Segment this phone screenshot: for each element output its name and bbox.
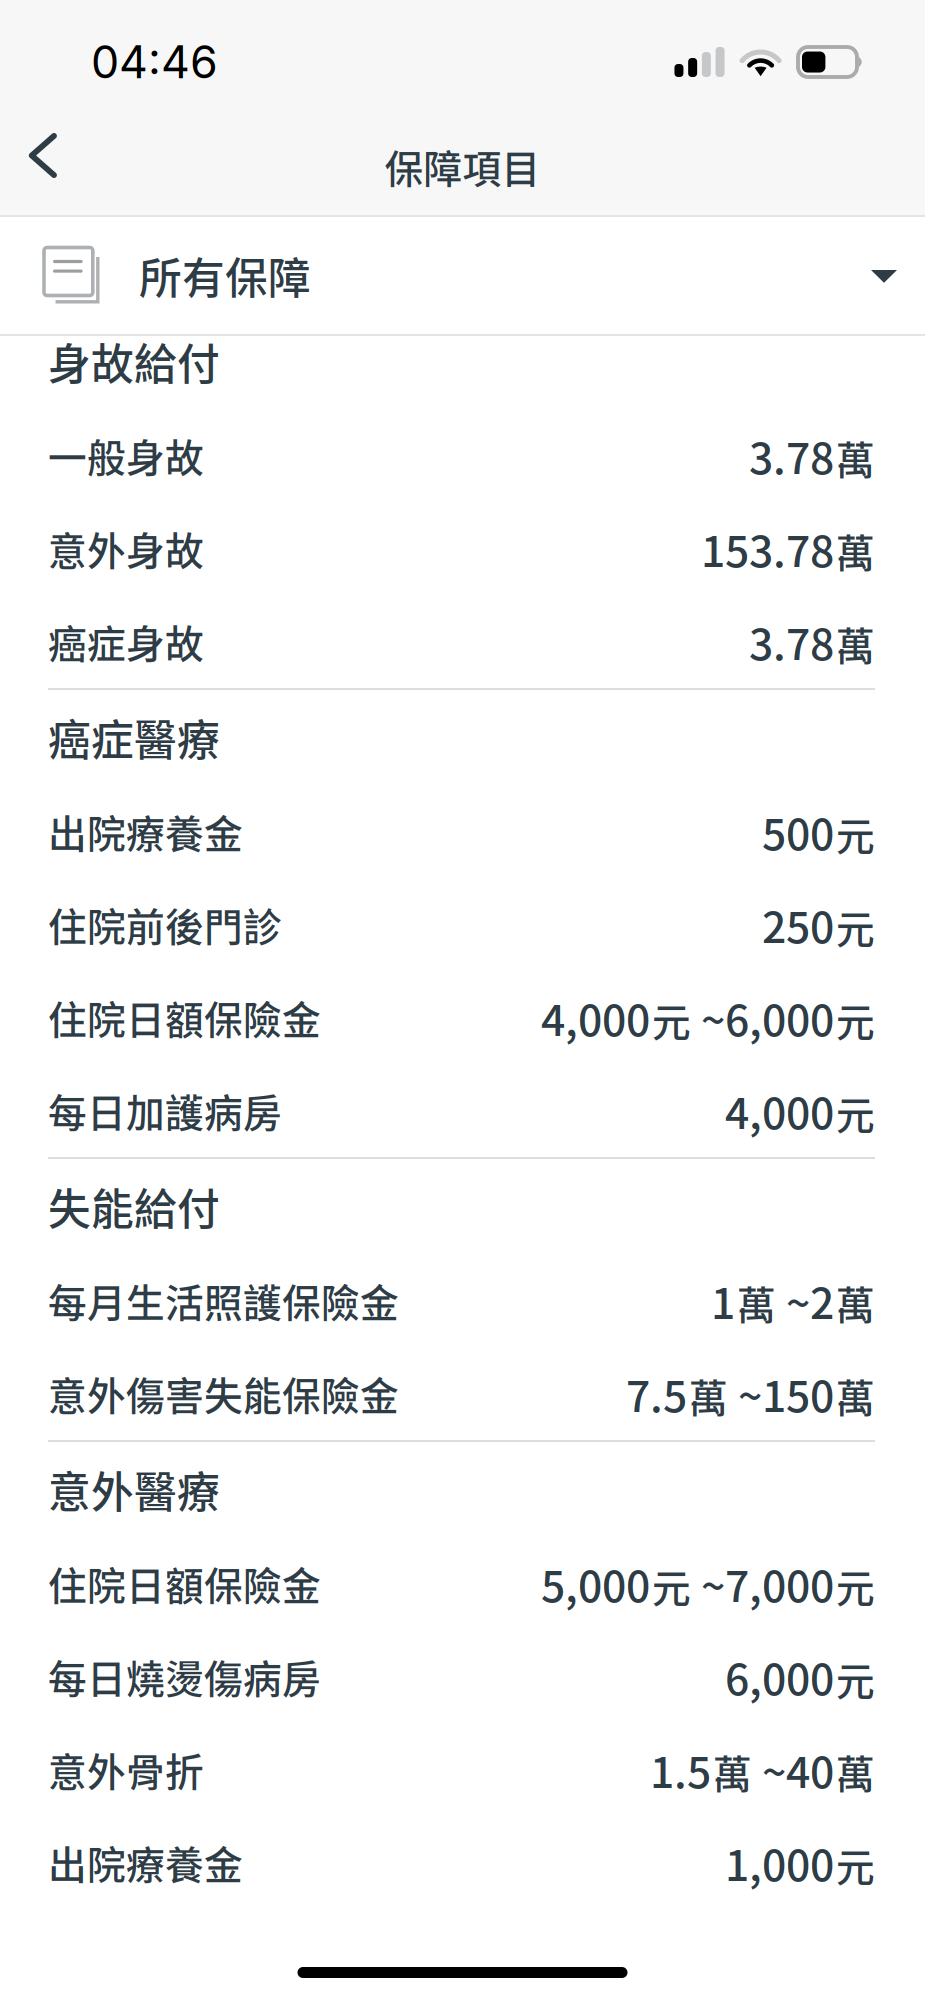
staticText: 1,000 元	[725, 1832, 875, 1893]
staticText: 4,000 元	[725, 1080, 875, 1141]
staticText: 04:46	[91, 35, 218, 89]
staticText: 1 萬 ~2 萬	[711, 1270, 875, 1331]
staticText: 所有保障	[139, 245, 311, 306]
staticText: 住院日額保險金	[48, 989, 321, 1045]
staticText: 5,000 元 ~7,000 元	[541, 1553, 875, 1614]
staticText: 250 元	[762, 894, 875, 955]
staticText: 意外醫療	[48, 1459, 220, 1520]
staticText: 153.78 萬	[701, 518, 875, 579]
staticText: 癌症醫療	[48, 707, 220, 768]
staticText: 保障項目	[384, 138, 540, 194]
staticText: 意外骨折	[48, 1741, 204, 1797]
staticText: 身故給付	[48, 331, 220, 392]
staticText: 每月生活照護保險金	[48, 1272, 399, 1328]
staticText: 每日燒燙傷病房	[48, 1648, 321, 1704]
staticText: 癌症身故	[48, 613, 204, 669]
staticText: 失能給付	[48, 1176, 220, 1237]
staticText: 一般身故	[48, 427, 204, 483]
staticText: 出院療養金	[48, 803, 243, 859]
staticText: 出院療養金	[48, 1834, 243, 1890]
staticText: 1.5 萬 ~40 萬	[650, 1739, 875, 1800]
staticText: 3.78 萬	[749, 611, 875, 672]
button[interactable]: 所有保障	[0, 217, 925, 334]
staticText: 住院日額保險金	[48, 1555, 321, 1611]
staticText: 每日加護病房	[48, 1082, 282, 1138]
staticText: 3.78 萬	[749, 425, 875, 486]
staticText: 意外傷害失能保險金	[48, 1365, 399, 1421]
staticText: 6,000 元	[725, 1646, 875, 1707]
staticText: 住院前後門診	[48, 896, 282, 952]
staticText: 7.5 萬 ~150 萬	[626, 1363, 875, 1424]
button[interactable]: 返回	[0, 124, 86, 215]
staticText: 500 元	[762, 801, 875, 862]
staticText: 4,000 元 ~6,000 元	[541, 987, 875, 1048]
staticText: 意外身故	[48, 520, 204, 576]
